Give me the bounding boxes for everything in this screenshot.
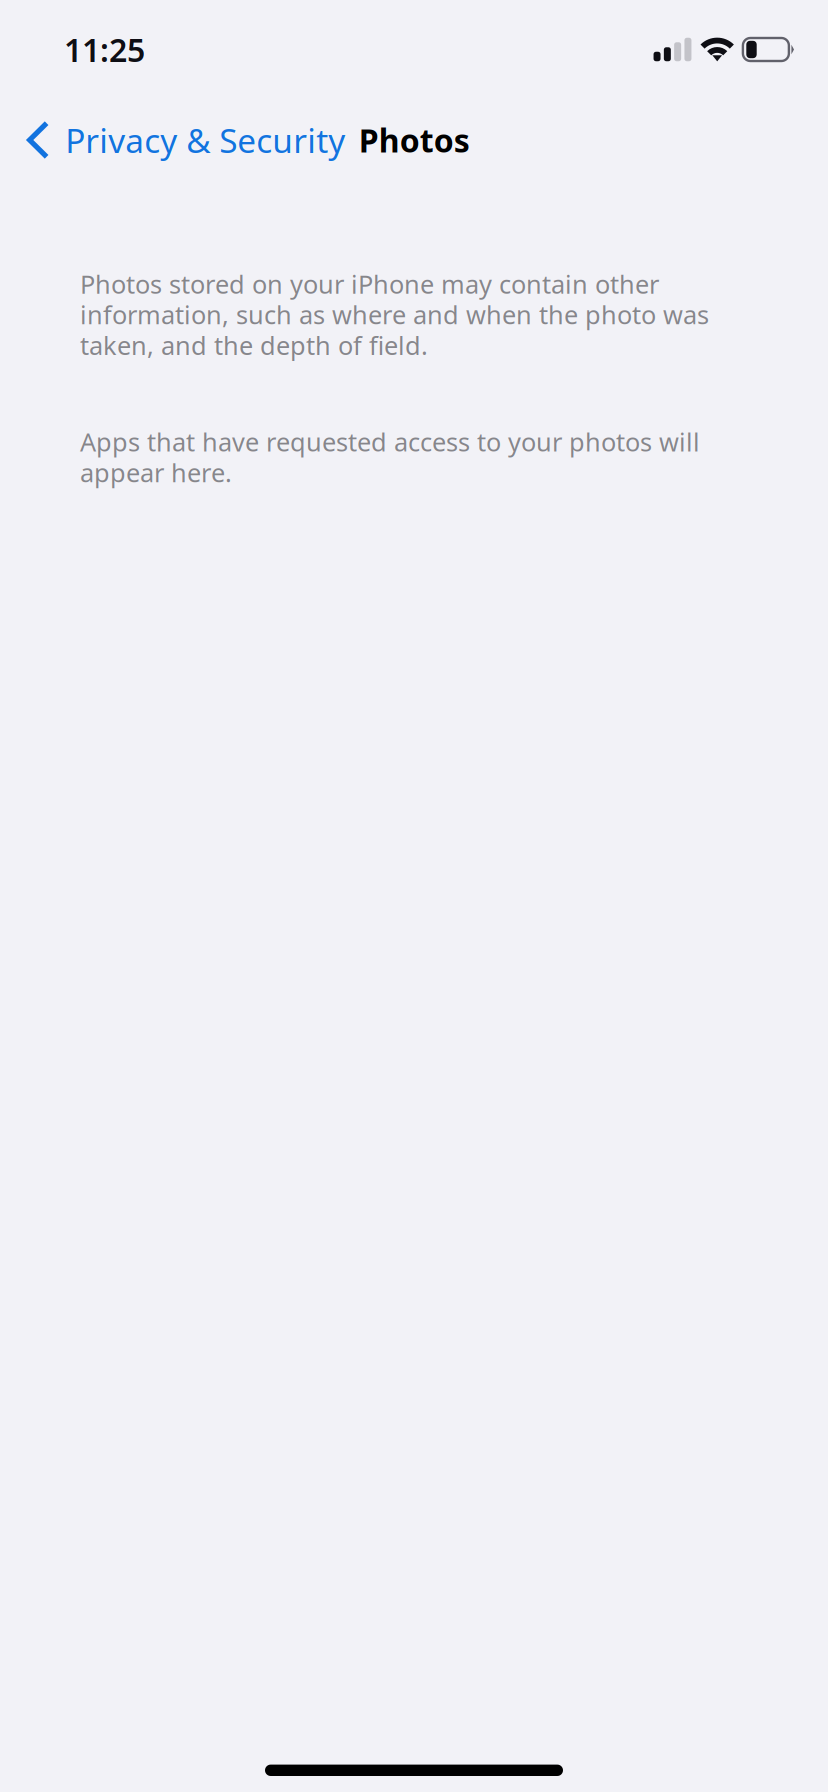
staticText: Apps that have requested access to your …	[80, 425, 700, 489]
staticText: Photos	[359, 119, 470, 161]
staticText: 11:25	[64, 28, 145, 71]
button[interactable]: Privacy & Security	[0, 99, 359, 181]
staticText: Privacy & Security	[65, 118, 345, 162]
staticText: Photos stored on your iPhone may contain…	[80, 267, 709, 362]
